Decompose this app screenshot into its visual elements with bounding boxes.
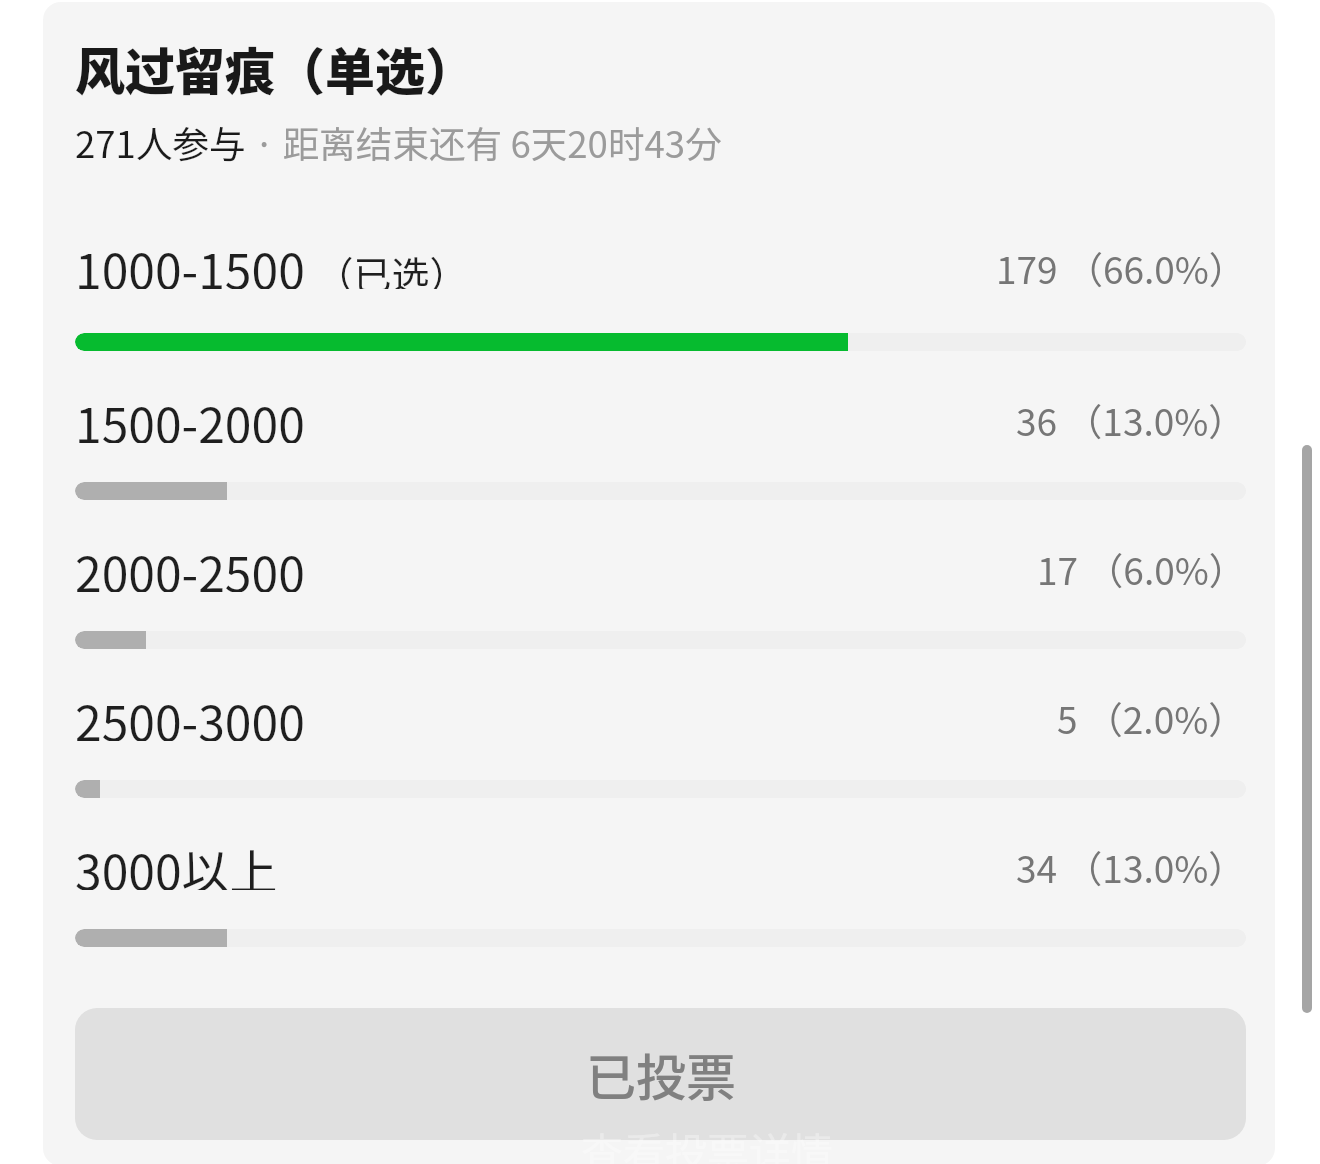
button[interactable]: 1000-1500 （已选）: [43, 233, 1275, 358]
staticText: 17 （6.0%）: [1037, 542, 1246, 596]
button[interactable]: 3000以上: [43, 829, 1275, 954]
button[interactable]: 已投票: [75, 1008, 1246, 1140]
staticText: 36 （13.0%）: [1016, 393, 1246, 447]
staticText: 1000-1500 （已选）: [75, 233, 468, 289]
button[interactable]: 1500-2000: [43, 382, 1275, 507]
staticText: 1500-2000: [75, 387, 305, 443]
staticText: 2500-3000: [75, 685, 305, 741]
staticText: 3000以上: [75, 834, 278, 890]
staticText: 风过留痕（单选）: [75, 32, 475, 104]
staticText: 已投票: [586, 1038, 736, 1110]
staticText: 2000-2500: [75, 536, 305, 592]
button[interactable]: 2500-3000: [43, 680, 1275, 805]
staticText: 271人参与 · 距离结束还有 6天20时43分: [75, 116, 722, 169]
staticText: 179 （66.0%）: [996, 241, 1246, 295]
staticText: 5 （2.0%）: [1057, 691, 1246, 745]
staticText: 查看投票详情: [581, 1120, 834, 1164]
staticText: 34 （13.0%）: [1016, 840, 1246, 894]
button[interactable]: 2000-2500: [43, 531, 1275, 656]
